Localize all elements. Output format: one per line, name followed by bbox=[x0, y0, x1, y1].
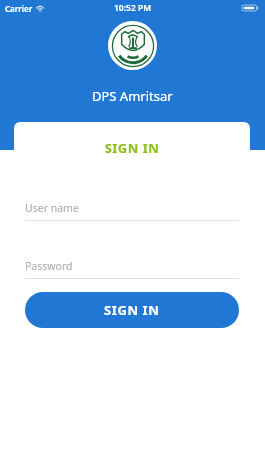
staticText: SIGN IN bbox=[104, 301, 160, 319]
staticText: Password bbox=[25, 259, 73, 273]
button[interactable]: SIGN IN bbox=[25, 292, 239, 328]
staticText: SIGN IN bbox=[14, 139, 250, 157]
other: Wi-Fi signal bbox=[36, 5, 44, 12]
button[interactable]: User name bbox=[25, 201, 239, 221]
staticText: Carrier bbox=[5, 3, 33, 14]
staticText: User name bbox=[25, 201, 79, 215]
button[interactable]: Password bbox=[25, 259, 239, 279]
staticText: 10:52 PM bbox=[114, 2, 152, 14]
other: Battery bbox=[242, 4, 259, 12]
staticText: DPS Amritsar bbox=[92, 87, 173, 105]
